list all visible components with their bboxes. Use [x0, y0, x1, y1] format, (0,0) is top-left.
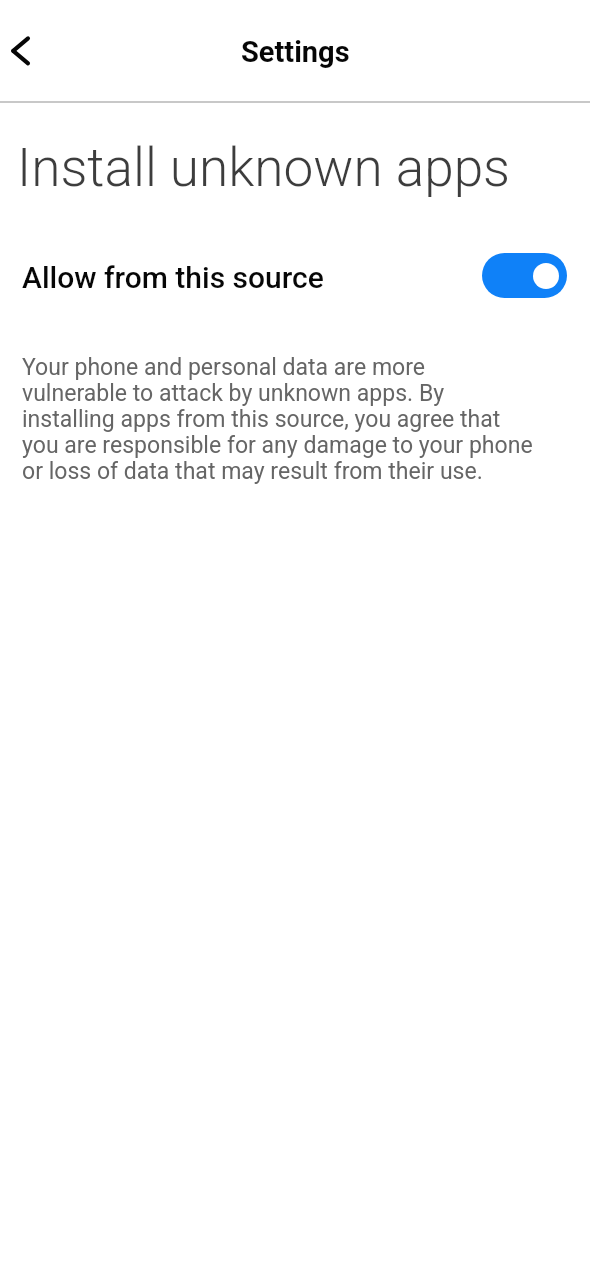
button[interactable]: Allow from this source, on [0, 240, 590, 314]
button[interactable]: Allow from this source toggle [482, 253, 567, 298]
staticText: Allow from this source [22, 260, 324, 295]
staticText: Settings [241, 35, 350, 69]
button[interactable]: Back [0, 13, 39, 89]
staticText: Your phone and personal data are more vu… [22, 354, 533, 485]
staticText: Install unknown apps [17, 137, 511, 199]
